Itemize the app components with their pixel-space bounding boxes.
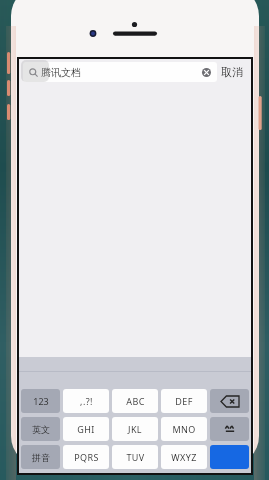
staticText: DEF <box>175 395 193 407</box>
staticText: 腾讯文档 <box>41 66 81 79</box>
button[interactable]: ,.?! <box>63 389 109 413</box>
button[interactable]: 拼音 <box>21 445 60 469</box>
staticText: TUV <box>126 451 145 463</box>
staticText: 拼音 <box>32 452 50 463</box>
button[interactable]: ABC <box>112 389 158 413</box>
staticText: JKL <box>128 423 142 435</box>
button[interactable]: Clear search <box>199 65 213 79</box>
staticText: ,.?! <box>80 395 93 407</box>
staticText: 取消 <box>221 65 243 79</box>
button[interactable]: WXYZ <box>161 445 207 469</box>
staticText: WXYZ <box>171 451 197 463</box>
button[interactable]: 英文 <box>21 417 60 441</box>
button[interactable]: 取消 <box>221 62 243 82</box>
button[interactable]: Shift <box>210 417 249 441</box>
button[interactable]: GHI <box>63 417 109 441</box>
staticText: GHI <box>77 423 95 435</box>
button[interactable]: 腾讯文档 <box>23 62 217 82</box>
button[interactable]: JKL <box>112 417 158 441</box>
staticText: ABC <box>126 395 145 407</box>
button[interactable]: PQRS <box>63 445 109 469</box>
button[interactable]: Search <box>210 445 249 469</box>
button[interactable]: Backspace <box>210 389 249 413</box>
staticText: MNO <box>172 423 196 435</box>
button[interactable]: TUV <box>112 445 158 469</box>
button[interactable]: 123 <box>21 389 60 413</box>
staticText: 123 <box>33 395 49 407</box>
button[interactable]: MNO <box>161 417 207 441</box>
staticText: 英文 <box>32 424 50 435</box>
button[interactable]: DEF <box>161 389 207 413</box>
staticText: PQRS <box>74 451 99 463</box>
